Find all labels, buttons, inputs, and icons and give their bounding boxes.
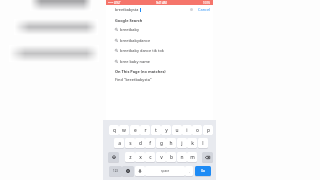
staticText: c [149,154,152,161]
staticText: l [202,140,204,147]
staticText: breetbabydance [120,38,151,43]
button[interactable]: r [140,125,150,135]
button[interactable]: i [182,125,192,135]
button[interactable]: v [156,152,166,162]
staticText: 123 [113,169,118,173]
staticText: w [122,127,126,134]
staticText: 9:41 AM [156,1,167,5]
button[interactable]: g [156,138,166,148]
staticText: space [161,169,170,173]
button[interactable]: space [145,166,185,176]
staticText: breetbaby dance tik tok [120,48,164,53]
button[interactable]: e [130,125,140,135]
button[interactable]: breetbaby dance tik tok [106,45,213,55]
staticText: y [165,127,168,134]
staticText: . [189,169,190,174]
staticText: j [181,140,183,147]
button[interactable]: k [187,138,197,148]
staticText: p [207,127,210,134]
button[interactable]: bree baby name [106,56,213,66]
staticText: h [169,140,173,147]
staticText: Go [201,169,206,173]
staticText: k [191,140,194,147]
staticText: n [180,154,184,161]
button[interactable]: h [166,138,176,148]
staticText: breetbabysta [115,7,139,12]
button[interactable]: m [187,152,197,162]
button[interactable]: o [192,125,202,135]
button[interactable]: Clear text [190,8,193,11]
staticText: z [129,154,132,161]
staticText: t [155,127,157,134]
staticText: x [139,154,142,161]
staticText: q [113,127,116,134]
staticText: e [134,127,137,134]
staticText: Cancel [198,7,211,12]
button[interactable]: n [177,152,187,162]
button[interactable]: c [145,152,155,162]
button[interactable]: Go [195,166,211,176]
button[interactable]: l [198,138,208,148]
staticText: Find “breetbabysta” [115,77,152,82]
button[interactable]: q [109,125,119,135]
button[interactable]: w [119,125,129,135]
button[interactable]: Shift [108,152,119,162]
button[interactable]: t [151,125,161,135]
staticText: ••••• AT&T [108,1,121,5]
button[interactable]: x [135,152,145,162]
staticText: o [196,127,199,134]
button[interactable]: Period [185,166,193,176]
button[interactable]: Backspace [202,152,213,162]
staticText: a [118,140,121,147]
button[interactable]: y [161,125,171,135]
staticText: r [144,127,147,134]
staticText: i [186,127,188,134]
button[interactable]: Dictate [135,166,145,176]
staticText: v [160,154,163,161]
staticText: f [149,140,151,147]
staticText: b [170,154,173,161]
button[interactable]: breetbaby [106,24,213,34]
staticText: g [160,140,163,147]
button[interactable]: z [125,152,135,162]
button[interactable]: breetbabydance [106,35,213,45]
button[interactable]: j [177,138,187,148]
button[interactable]: p [203,125,213,135]
button[interactable]: b [166,152,176,162]
button[interactable]: s [125,138,135,148]
staticText: u [175,127,179,134]
staticText: d [139,140,142,147]
button[interactable]: Find “breetbabysta” [106,74,213,84]
button[interactable]: f [145,138,155,148]
button[interactable]: Cancel [198,7,211,12]
staticText: On This Page (no matches) [115,69,166,74]
staticText: bree baby name [120,59,151,64]
staticText: m [190,154,195,161]
button[interactable]: a [114,138,124,148]
staticText: s [129,140,132,147]
staticText: 100% [203,1,211,5]
button[interactable]: Numbers and symbols [109,166,122,176]
staticText: breetbaby [120,27,139,32]
button[interactable]: d [135,138,145,148]
staticText: Google Search [115,18,143,23]
button[interactable]: u [172,125,182,135]
button[interactable]: Switch keyboard [122,166,134,176]
